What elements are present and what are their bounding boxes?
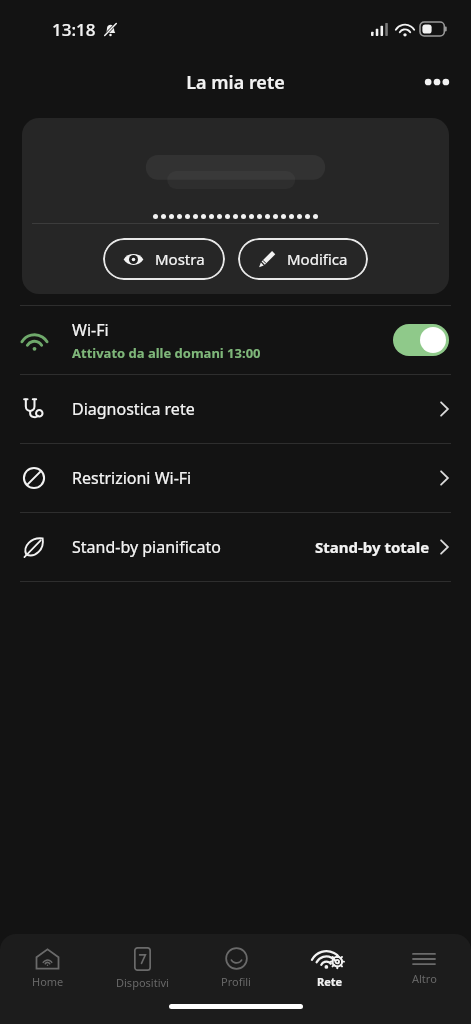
button[interactable]: Wi-Fi (0, 306, 471, 374)
staticText: La mia rete (186, 70, 285, 95)
button[interactable]: Wi-Fi toggle (393, 324, 449, 356)
staticText: Home (32, 974, 64, 989)
staticText: Restrizioni Wi-Fi (72, 467, 440, 489)
button[interactable]: Home (0, 940, 95, 996)
button[interactable]: More options (413, 58, 461, 106)
button[interactable]: Rete (283, 940, 377, 996)
button[interactable]: Restrizioni Wi-Fi (0, 444, 471, 512)
staticText: Stand-by pianificato (72, 536, 315, 558)
staticText: Stand-by totale (315, 537, 430, 557)
button[interactable]: Dispositivi (95, 940, 189, 996)
staticText: Diagnostica rete (72, 398, 440, 420)
staticText: Dispositivi (116, 975, 169, 990)
staticText: Rete (317, 974, 343, 989)
staticText: 13:18 (52, 18, 96, 41)
staticText: Modifica (287, 249, 348, 269)
staticText: Wi-Fi (72, 319, 109, 341)
button[interactable]: Mostra (103, 238, 225, 280)
button[interactable]: Modifica (238, 238, 368, 280)
button[interactable]: Stand-by pianificato (0, 513, 471, 581)
button[interactable]: Profili (189, 940, 283, 996)
staticText: Altro (412, 971, 437, 986)
button[interactable]: Altro (377, 940, 471, 996)
staticText: Attivato da alle domani 13:00 (72, 344, 261, 362)
staticText: Mostra (155, 249, 205, 269)
staticText: Profili (221, 974, 251, 989)
button[interactable]: Diagnostica rete (0, 375, 471, 443)
